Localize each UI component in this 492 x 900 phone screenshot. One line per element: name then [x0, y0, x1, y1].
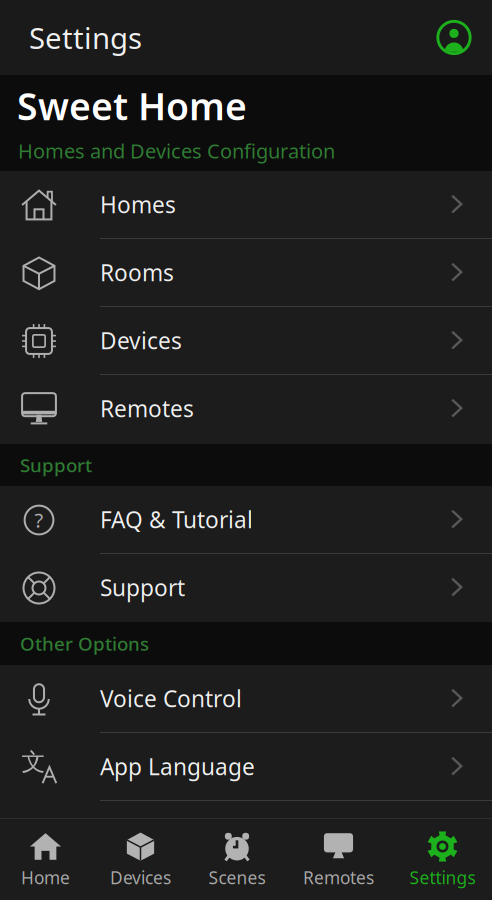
staticText: 文 [22, 747, 46, 777]
button[interactable]: Remotes [0, 375, 492, 443]
button[interactable]: Account [437, 20, 492, 54]
staticText: Remotes [303, 866, 374, 889]
button[interactable]: Home [0, 819, 91, 900]
button[interactable]: Rooms [0, 239, 492, 307]
button[interactable]: Devices [91, 819, 190, 900]
button[interactable]: Homes [0, 171, 492, 239]
button[interactable]: Scenes [190, 819, 284, 900]
staticText: Settings [29, 18, 142, 57]
staticText: Rooms [100, 257, 174, 287]
staticText: App Language [100, 751, 255, 781]
staticText: ? [34, 507, 43, 533]
staticText: Voice Control [100, 683, 242, 713]
button[interactable]: Support [0, 554, 492, 622]
staticText: Devices [100, 325, 182, 355]
button[interactable]: Remotes [284, 819, 393, 900]
staticText: Support [20, 453, 92, 477]
staticText: Support [100, 572, 185, 602]
staticText: Scenes [208, 866, 265, 889]
staticText: Home [21, 866, 70, 889]
button[interactable]: Devices [0, 307, 492, 375]
staticText: Sweet Home [17, 81, 247, 131]
staticText: Remotes [100, 393, 194, 423]
staticText: Homes [100, 189, 176, 219]
staticText: Other Options [20, 631, 149, 656]
staticText: Devices [110, 866, 171, 889]
button[interactable]: 文 [0, 733, 492, 801]
button[interactable]: Voice Control [0, 665, 492, 733]
staticText: Homes and Devices Configuration [18, 138, 335, 164]
staticText: Settings [409, 866, 475, 889]
staticText: FAQ & Tutorial [100, 504, 253, 534]
button[interactable]: ? [0, 486, 492, 554]
button[interactable]: Settings [393, 819, 492, 900]
